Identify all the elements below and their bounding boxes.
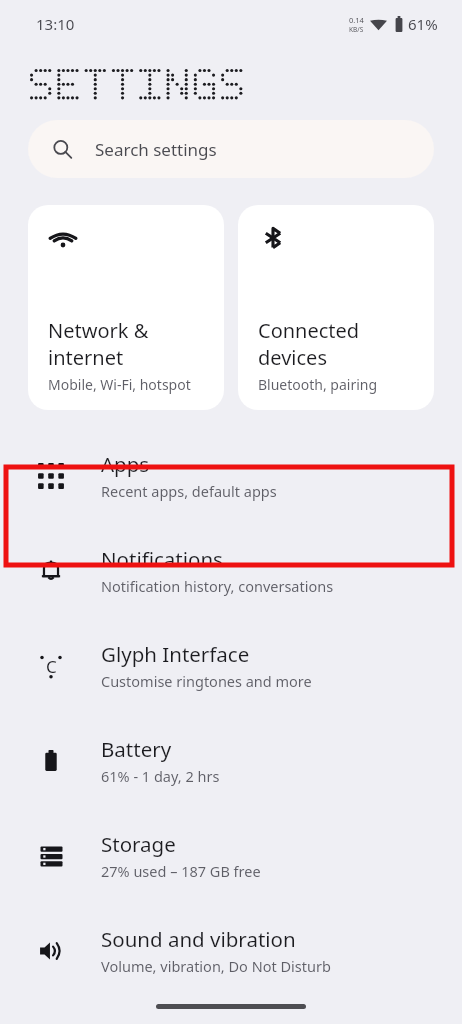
staticText: Recent apps, default apps [101,481,277,501]
button[interactable]: Notifications [0,523,462,618]
staticText: internet [48,344,124,371]
staticText: Connected [258,317,360,344]
button[interactable]: Connected [238,205,434,410]
staticText: Sound and vibration [101,925,296,953]
staticText: Volume, vibration, Do Not Disturb [101,956,331,976]
staticText: C [46,655,57,678]
staticText: Storage [101,830,176,858]
button[interactable]: Network & [28,205,224,410]
staticText: 27% used – 187 GB free [101,861,261,881]
button[interactable]: Sound and vibration [0,903,462,998]
staticText: Glyph Interface [101,640,250,668]
staticText: 61% [408,14,438,34]
staticText: devices [258,344,327,371]
button[interactable]: C [0,618,462,713]
staticText: Battery [101,735,172,763]
staticText: Notification history, conversations [101,576,334,596]
staticText: Notifications [101,545,223,573]
staticText: Network & [48,317,149,344]
button[interactable]: Apps [0,428,462,523]
staticText: Mobile, Wi-Fi, hotspot [48,375,191,394]
staticText: 0.14 [349,15,364,25]
staticText: 13:10 [36,14,75,34]
staticText: KB/S [349,25,364,34]
staticText: Search settings [95,138,217,161]
button[interactable]: Storage [0,808,462,903]
staticText: 61% - 1 day, 2 hrs [101,766,220,786]
staticText: Bluetooth, pairing [258,375,378,394]
button[interactable]: Battery [0,713,462,808]
staticText: Apps [101,450,150,478]
staticText: Customise ringtones and more [101,671,312,691]
button[interactable]: Search settings [28,120,434,178]
